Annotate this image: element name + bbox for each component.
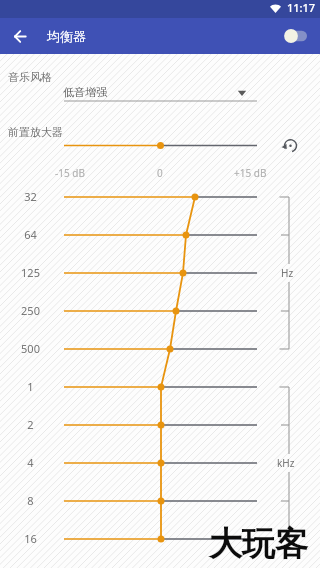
staticText: 16 <box>24 531 37 546</box>
staticText: 低音增强 <box>63 85 107 99</box>
staticText: 音乐风格 <box>8 70 52 84</box>
staticText: 均衡器 <box>47 28 86 44</box>
staticText: 4 <box>27 455 34 470</box>
staticText: 32 <box>24 189 37 204</box>
staticText: 500 <box>21 341 40 356</box>
staticText: 1 <box>27 379 34 394</box>
staticText: 8 <box>27 493 34 508</box>
staticText: 2 <box>27 417 34 432</box>
staticText: kHz <box>277 456 295 470</box>
staticText: 64 <box>24 227 37 242</box>
staticText: Hz <box>281 266 294 280</box>
button[interactable]: Back <box>0 18 40 54</box>
staticText: -15 dB <box>55 166 85 180</box>
button[interactable]: Enable equalizer <box>276 18 320 54</box>
staticText: 前置放大器 <box>8 125 63 139</box>
staticText: 0 <box>157 166 163 180</box>
staticText: +15 dB <box>234 166 267 180</box>
staticText: 大玩客 <box>209 523 308 565</box>
staticText: 125 <box>21 265 40 280</box>
staticText: 11:17 <box>287 0 316 15</box>
staticText: 250 <box>21 303 40 318</box>
